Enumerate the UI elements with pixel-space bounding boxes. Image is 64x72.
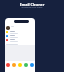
button[interactable]: Tab 2 (12, 63, 16, 67)
button[interactable] (5, 31, 35, 35)
button[interactable] (5, 39, 35, 43)
button[interactable] (5, 35, 35, 39)
staticText: Email Cleaner (0, 2, 64, 7)
button[interactable]: Tab 4 (24, 63, 28, 67)
button[interactable]: Tab 1 (6, 63, 10, 67)
button[interactable]: Tab 5 (30, 63, 34, 67)
staticText: Organize your inbox (0, 6, 64, 9)
button[interactable]: Tab 3 (18, 63, 22, 67)
button[interactable]: Profile (6, 26, 10, 30)
